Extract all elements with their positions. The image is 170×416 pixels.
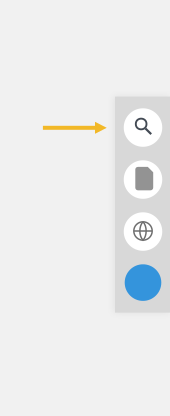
button[interactable]: Browser: [124, 212, 162, 251]
button[interactable]: Search: [124, 108, 162, 147]
button[interactable]: Add: [125, 264, 161, 301]
button[interactable]: Document: [124, 160, 162, 199]
